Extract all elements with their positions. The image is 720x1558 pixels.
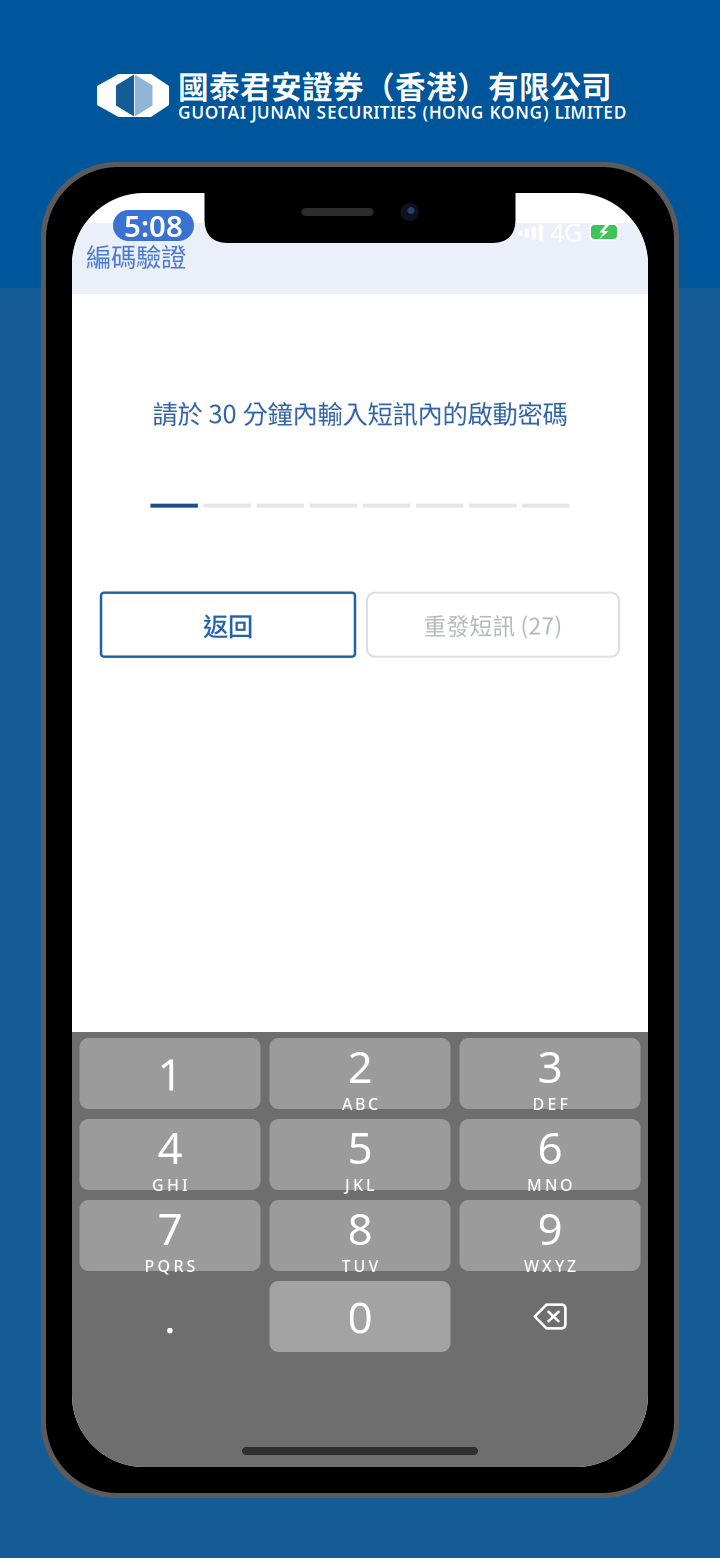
staticText: A B C bbox=[342, 1093, 378, 1114]
staticText: 7 bbox=[157, 1199, 182, 1257]
staticText: 4 bbox=[157, 1118, 182, 1176]
staticText: 編碼驗證 bbox=[86, 237, 186, 274]
staticText: 2 bbox=[347, 1037, 372, 1095]
staticText: 國泰君安證券（香港）有限公司 bbox=[178, 63, 612, 107]
staticText: 3 bbox=[537, 1037, 562, 1095]
button[interactable]: 8 bbox=[269, 1200, 450, 1271]
button[interactable]: 1 bbox=[79, 1038, 260, 1109]
staticText: 1 bbox=[157, 1044, 182, 1103]
staticText: 0 bbox=[347, 1287, 372, 1346]
staticText: M N O bbox=[527, 1174, 573, 1195]
button[interactable]: 返回 bbox=[101, 593, 355, 657]
button[interactable]: 2 bbox=[269, 1038, 450, 1109]
button[interactable]: Delete bbox=[459, 1281, 640, 1352]
staticText: D E F bbox=[532, 1093, 567, 1114]
button[interactable]: 0 bbox=[269, 1281, 450, 1352]
staticText: W X Y Z bbox=[524, 1255, 576, 1276]
button[interactable]: 5 bbox=[269, 1119, 450, 1190]
staticText: 4G bbox=[550, 215, 582, 249]
button[interactable]: 9 bbox=[459, 1200, 640, 1271]
staticText: 返回 bbox=[203, 606, 253, 643]
button[interactable]: 3 bbox=[459, 1038, 640, 1109]
staticText: 請於 30 分鐘內輸入短訊內的啟動密碼 bbox=[152, 394, 567, 431]
staticText: . bbox=[164, 1287, 176, 1346]
button[interactable]: . bbox=[79, 1281, 260, 1352]
button[interactable]: 7 bbox=[79, 1200, 260, 1271]
staticText: G H I bbox=[152, 1174, 188, 1195]
staticText: T U V bbox=[341, 1255, 378, 1276]
button[interactable]: 重發短訊 (27) bbox=[367, 593, 619, 657]
staticText: 9 bbox=[537, 1199, 562, 1257]
staticText: P Q R S bbox=[144, 1255, 195, 1276]
staticText: 5 bbox=[347, 1118, 372, 1176]
button[interactable]: 4 bbox=[79, 1119, 260, 1190]
staticText: J K L bbox=[345, 1174, 375, 1195]
staticText: 6 bbox=[537, 1118, 562, 1176]
staticText: 5:08 bbox=[124, 206, 183, 245]
button[interactable]: 6 bbox=[459, 1119, 640, 1190]
staticText: 8 bbox=[347, 1199, 372, 1257]
staticText: 重發短訊 (27) bbox=[423, 608, 562, 641]
staticText: GUOTAI JUNAN SECURITIES (HONG KONG) LIMI… bbox=[178, 100, 627, 123]
